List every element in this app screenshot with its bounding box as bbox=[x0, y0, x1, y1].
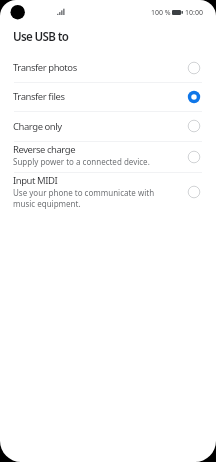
button[interactable]: Reverse charge bbox=[0, 141, 216, 172]
staticText: Transfer photos bbox=[13, 61, 77, 74]
staticText: 100 % bbox=[151, 8, 171, 18]
other: Not selected bbox=[187, 61, 201, 75]
other: Not selected bbox=[187, 119, 201, 133]
staticText: Reverse charge bbox=[13, 143, 76, 156]
button[interactable]: Transfer photos bbox=[0, 53, 216, 82]
staticText: Supply power to a connected device. bbox=[13, 156, 150, 167]
other: Battery full bbox=[172, 10, 183, 15]
staticText: Use your phone to communicate with music… bbox=[13, 187, 175, 210]
staticText: Transfer files bbox=[13, 90, 65, 103]
staticText: Input MIDI bbox=[13, 174, 58, 187]
other: Mobile signal strength bbox=[57, 9, 65, 15]
other: Not selected bbox=[187, 185, 201, 199]
other: Not selected bbox=[187, 150, 201, 164]
button[interactable]: Charge only bbox=[0, 111, 216, 141]
other: Selected bbox=[187, 90, 201, 104]
button[interactable]: Input MIDI bbox=[0, 172, 216, 211]
staticText: Charge only bbox=[13, 120, 62, 133]
button[interactable]: Transfer files bbox=[0, 82, 216, 111]
staticText: 10:00 bbox=[185, 8, 203, 18]
staticText: Use USB to bbox=[13, 29, 69, 45]
